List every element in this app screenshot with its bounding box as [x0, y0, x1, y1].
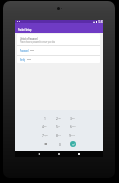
button[interactable]: 5: [52, 122, 66, 130]
staticText: GHI: [44, 125, 47, 127]
staticText: DEF: [72, 117, 75, 119]
button[interactable]: 3: [66, 114, 80, 122]
staticText: MNO: [72, 125, 76, 127]
staticText: 3: [70, 116, 72, 121]
button[interactable]: 1: [38, 114, 52, 122]
button[interactable]: 6: [66, 122, 80, 130]
staticText: WXYZ: [71, 134, 75, 136]
button[interactable]: Password: [17, 46, 100, 55]
button[interactable]: Delete: [38, 139, 52, 148]
button[interactable]: 8: [52, 130, 66, 139]
button[interactable]: 4: [38, 122, 52, 130]
button[interactable]: Verify: [17, 56, 100, 63]
staticText: 6: [70, 124, 72, 129]
staticText: JKL: [58, 125, 60, 127]
staticText: Please choose a password to secure your …: [20, 40, 55, 44]
staticText: 4: [42, 124, 44, 129]
staticText: 8: [56, 133, 58, 138]
staticText: 9: [69, 133, 71, 138]
staticText: PQRS: [44, 134, 48, 136]
staticText: Unlock sPassword: [20, 36, 38, 41]
button[interactable]: Home: [52, 151, 66, 157]
button[interactable]: Back: [32, 151, 46, 157]
staticText: 12:30: [98, 20, 103, 24]
button[interactable]: 2: [52, 114, 66, 122]
staticText: 2: [56, 116, 58, 121]
button[interactable]: 7: [38, 130, 52, 139]
staticText: 0: [59, 142, 61, 147]
staticText: 1: [44, 116, 46, 121]
button[interactable]: Done: [66, 139, 80, 148]
staticText: Password: [20, 49, 28, 53]
staticText: ABC: [58, 117, 61, 119]
staticText: Verify: [20, 58, 25, 62]
staticText: 7: [42, 133, 44, 138]
button[interactable]: 9: [66, 130, 80, 139]
staticText: Pocket Setup: [18, 27, 31, 32]
button[interactable]: Recent apps: [72, 151, 86, 157]
staticText: TUV: [58, 134, 61, 136]
staticText: 5: [56, 124, 58, 129]
button[interactable]: 0: [52, 139, 66, 148]
